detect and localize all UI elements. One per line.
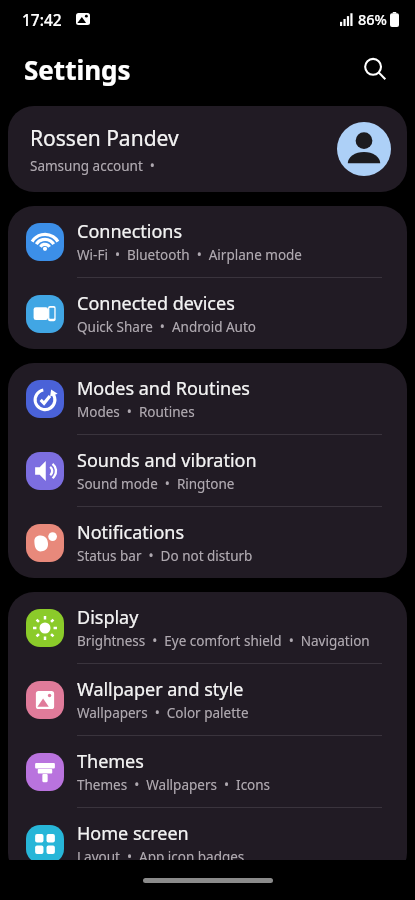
staticText: Wallpaper and style [77,677,244,702]
staticText: Modes and Routines [77,376,250,401]
button[interactable]: Connected devices [8,278,407,349]
button[interactable]: Themes [8,736,407,807]
staticText: 17:42 [22,9,62,30]
staticText: 86% [358,9,387,29]
staticText: Sounds and vibration [77,448,257,473]
button[interactable]: Modes and Routines [8,363,407,434]
button[interactable]: Rossen Pandev [8,106,407,192]
button[interactable]: Search [353,47,397,91]
staticText: Wi-Fi • Bluetooth • Airplane mode [77,246,302,264]
staticText: Wallpapers • Color palette [77,704,249,722]
button[interactable]: Notifications [8,507,407,578]
staticText: Display [77,605,139,630]
button[interactable]: Wallpaper and style [8,664,407,735]
staticText: Notifications [77,520,185,545]
staticText: Rossen Pandev [30,124,179,153]
staticText: Samsung account • ros**********@gmail.co… [30,157,329,175]
staticText: Themes [77,749,144,774]
staticText: Home screen [77,821,189,846]
staticText: Status bar • Do not disturb [77,547,253,565]
button[interactable]: Display [8,592,407,663]
button[interactable]: Connections [8,206,407,277]
staticText: Brightness • Eye comfort shield • Naviga… [77,632,391,650]
button[interactable]: Home screen [8,808,407,879]
staticText: Settings [24,52,131,87]
staticText: Sound mode • Ringtone [77,475,235,493]
staticText: Themes • Wallpapers • Icons [77,776,271,794]
staticText: Modes • Routines [77,403,195,421]
staticText: Connections [77,219,183,244]
staticText: Connected devices [77,291,235,316]
button[interactable]: Sounds and vibration [8,435,407,506]
staticText: Quick Share • Android Auto [77,318,256,336]
staticText: Layout • App icon badges [77,848,245,866]
